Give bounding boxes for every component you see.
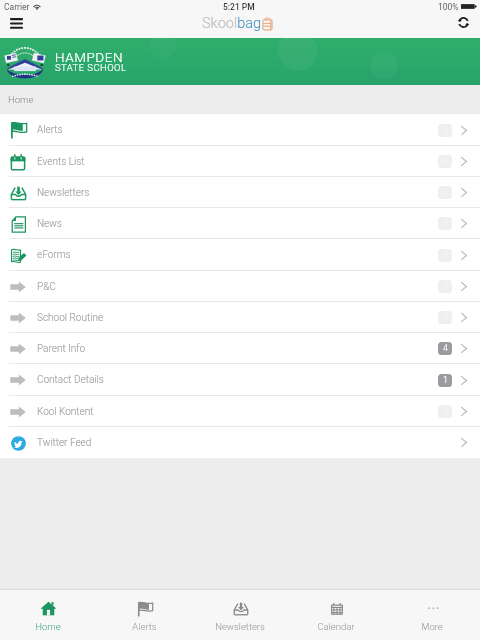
staticText: Newsletters xyxy=(37,187,90,199)
staticText: STATE SCHOOL xyxy=(55,62,127,73)
button[interactable]: More xyxy=(384,590,480,640)
staticText: News xyxy=(37,218,62,230)
staticText: 5:21 PM xyxy=(223,2,255,12)
staticText: Newsletters xyxy=(215,621,265,632)
button[interactable]: School Routine xyxy=(0,302,480,333)
button[interactable]: eForms xyxy=(0,239,480,271)
staticText: 100% xyxy=(438,2,459,12)
button[interactable]: Alerts xyxy=(0,114,480,146)
button[interactable]: P&C xyxy=(0,271,480,302)
button[interactable]: Newsletters xyxy=(192,590,288,640)
staticText: Kool Kontent xyxy=(37,406,94,418)
staticText: Alerts xyxy=(37,124,63,136)
staticText: Calendar xyxy=(317,621,355,632)
staticText: Events List xyxy=(37,156,85,168)
staticText: 4 xyxy=(443,343,448,354)
button[interactable]: Calendar xyxy=(288,590,384,640)
button[interactable]: Twitter Feed xyxy=(0,427,480,458)
staticText: P&C xyxy=(37,281,56,293)
staticText: Contact Details xyxy=(37,374,104,386)
button[interactable]: Parent Info xyxy=(0,333,480,364)
staticText: Carrier xyxy=(4,2,30,12)
staticText: 1 xyxy=(443,375,448,386)
button[interactable]: Contact Details xyxy=(0,364,480,396)
staticText: School Routine xyxy=(37,312,104,324)
staticText: eForms xyxy=(37,249,71,261)
staticText: Skoolbag xyxy=(202,15,262,32)
button[interactable]: Kool Kontent xyxy=(0,396,480,427)
button[interactable]: Newsletters xyxy=(0,177,480,208)
staticText: Parent Info xyxy=(37,343,86,355)
staticText: Alerts xyxy=(132,621,157,632)
button[interactable]: Refresh xyxy=(446,13,480,38)
button[interactable]: Alerts xyxy=(96,590,192,640)
staticText: HAMPDEN xyxy=(55,49,124,65)
staticText: Twitter Feed xyxy=(37,437,92,449)
staticText: More xyxy=(421,621,443,632)
button[interactable]: News xyxy=(0,208,480,239)
button[interactable]: Menu xyxy=(0,13,32,38)
staticText: Home xyxy=(8,94,34,105)
staticText: Home xyxy=(35,621,61,632)
button[interactable]: Home xyxy=(0,590,96,640)
button[interactable]: Events List xyxy=(0,146,480,177)
